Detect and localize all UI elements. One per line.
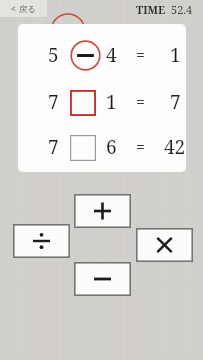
staticText: =	[136, 44, 145, 66]
staticText: 42	[164, 134, 186, 160]
staticText: TIME	[136, 2, 166, 17]
staticText: 戻る	[19, 4, 37, 15]
staticText: 1	[170, 42, 181, 68]
staticText: 6	[106, 134, 117, 160]
staticText: 52.4	[171, 2, 193, 17]
button[interactable]: Minus	[74, 262, 131, 296]
button[interactable]: Minus, answered	[70, 40, 101, 71]
button[interactable]: Empty operator slot	[70, 90, 96, 116]
staticText: =	[136, 91, 145, 113]
button[interactable]: <	[0, 0, 47, 17]
staticText: <	[11, 3, 16, 15]
staticText: 4	[106, 42, 117, 68]
button[interactable]: Empty operator slot	[70, 135, 96, 161]
button[interactable]: Multiply	[136, 228, 193, 262]
staticText: 1	[106, 89, 117, 115]
staticText: =	[136, 136, 145, 158]
button[interactable]: Plus	[74, 194, 131, 228]
staticText: 7	[48, 89, 59, 115]
staticText: 7	[48, 134, 59, 160]
staticText: 5	[48, 42, 59, 68]
staticText: 7	[170, 89, 181, 115]
button[interactable]: Divide	[13, 224, 70, 258]
